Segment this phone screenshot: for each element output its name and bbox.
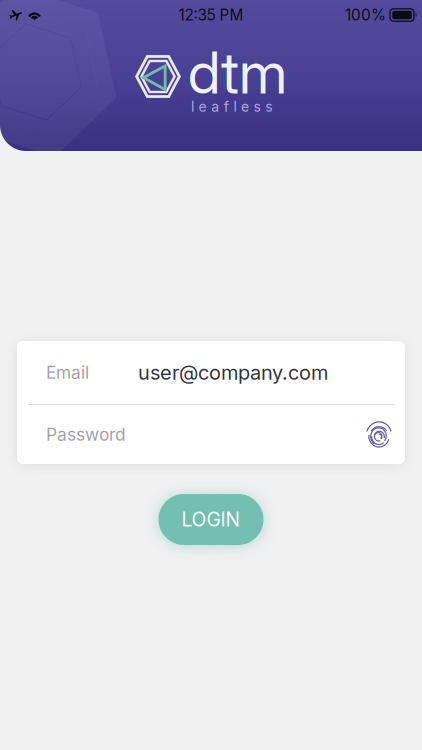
staticText: user@company.com (138, 360, 328, 385)
staticText: 12:35 PM (178, 6, 243, 24)
staticText: 100% (345, 6, 386, 24)
staticText: Password (46, 424, 126, 445)
button[interactable]: LOGIN (158, 494, 263, 545)
staticText: Email (46, 362, 89, 383)
staticText: LOGIN (181, 508, 240, 531)
staticText: dtm (188, 38, 287, 107)
staticText: leafless (191, 98, 272, 115)
